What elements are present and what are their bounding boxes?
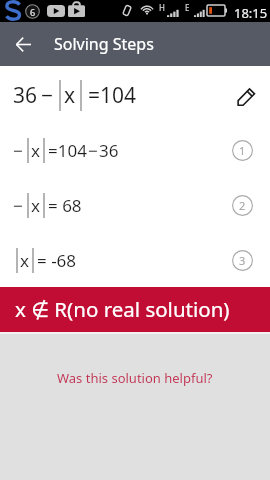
staticText: 1 <box>239 143 246 158</box>
staticText: E <box>185 2 190 13</box>
staticText: =104 <box>88 81 137 110</box>
button[interactable]: Back <box>0 22 47 66</box>
staticText: − <box>13 139 23 162</box>
staticText: x <box>31 139 40 162</box>
button[interactable]: 2 <box>232 195 253 216</box>
button[interactable]: 1 <box>232 140 253 161</box>
staticText: Solving Steps <box>54 33 154 55</box>
staticText: x ∉ R(no real solution) <box>15 295 230 323</box>
button[interactable]: 3 <box>232 250 253 271</box>
staticText: x <box>31 194 40 217</box>
staticText: 36 <box>99 139 119 162</box>
staticText: x <box>20 249 29 272</box>
staticText: − <box>88 139 98 162</box>
staticText: − <box>41 81 54 110</box>
staticText: Was this solution helpful? <box>57 369 213 387</box>
staticText: − <box>13 194 23 217</box>
staticText: H <box>159 2 165 13</box>
staticText: 2 <box>239 198 246 213</box>
staticText: 36 <box>13 81 38 110</box>
button[interactable]: Edit <box>232 82 260 110</box>
staticText: = 68 <box>48 194 82 217</box>
staticText: 18:15 <box>234 4 268 22</box>
staticText: =104 <box>48 139 87 162</box>
staticText: x <box>64 81 76 110</box>
staticText: 3 <box>239 253 246 268</box>
staticText: = -68 <box>37 249 77 272</box>
staticText: 6 <box>30 6 36 18</box>
